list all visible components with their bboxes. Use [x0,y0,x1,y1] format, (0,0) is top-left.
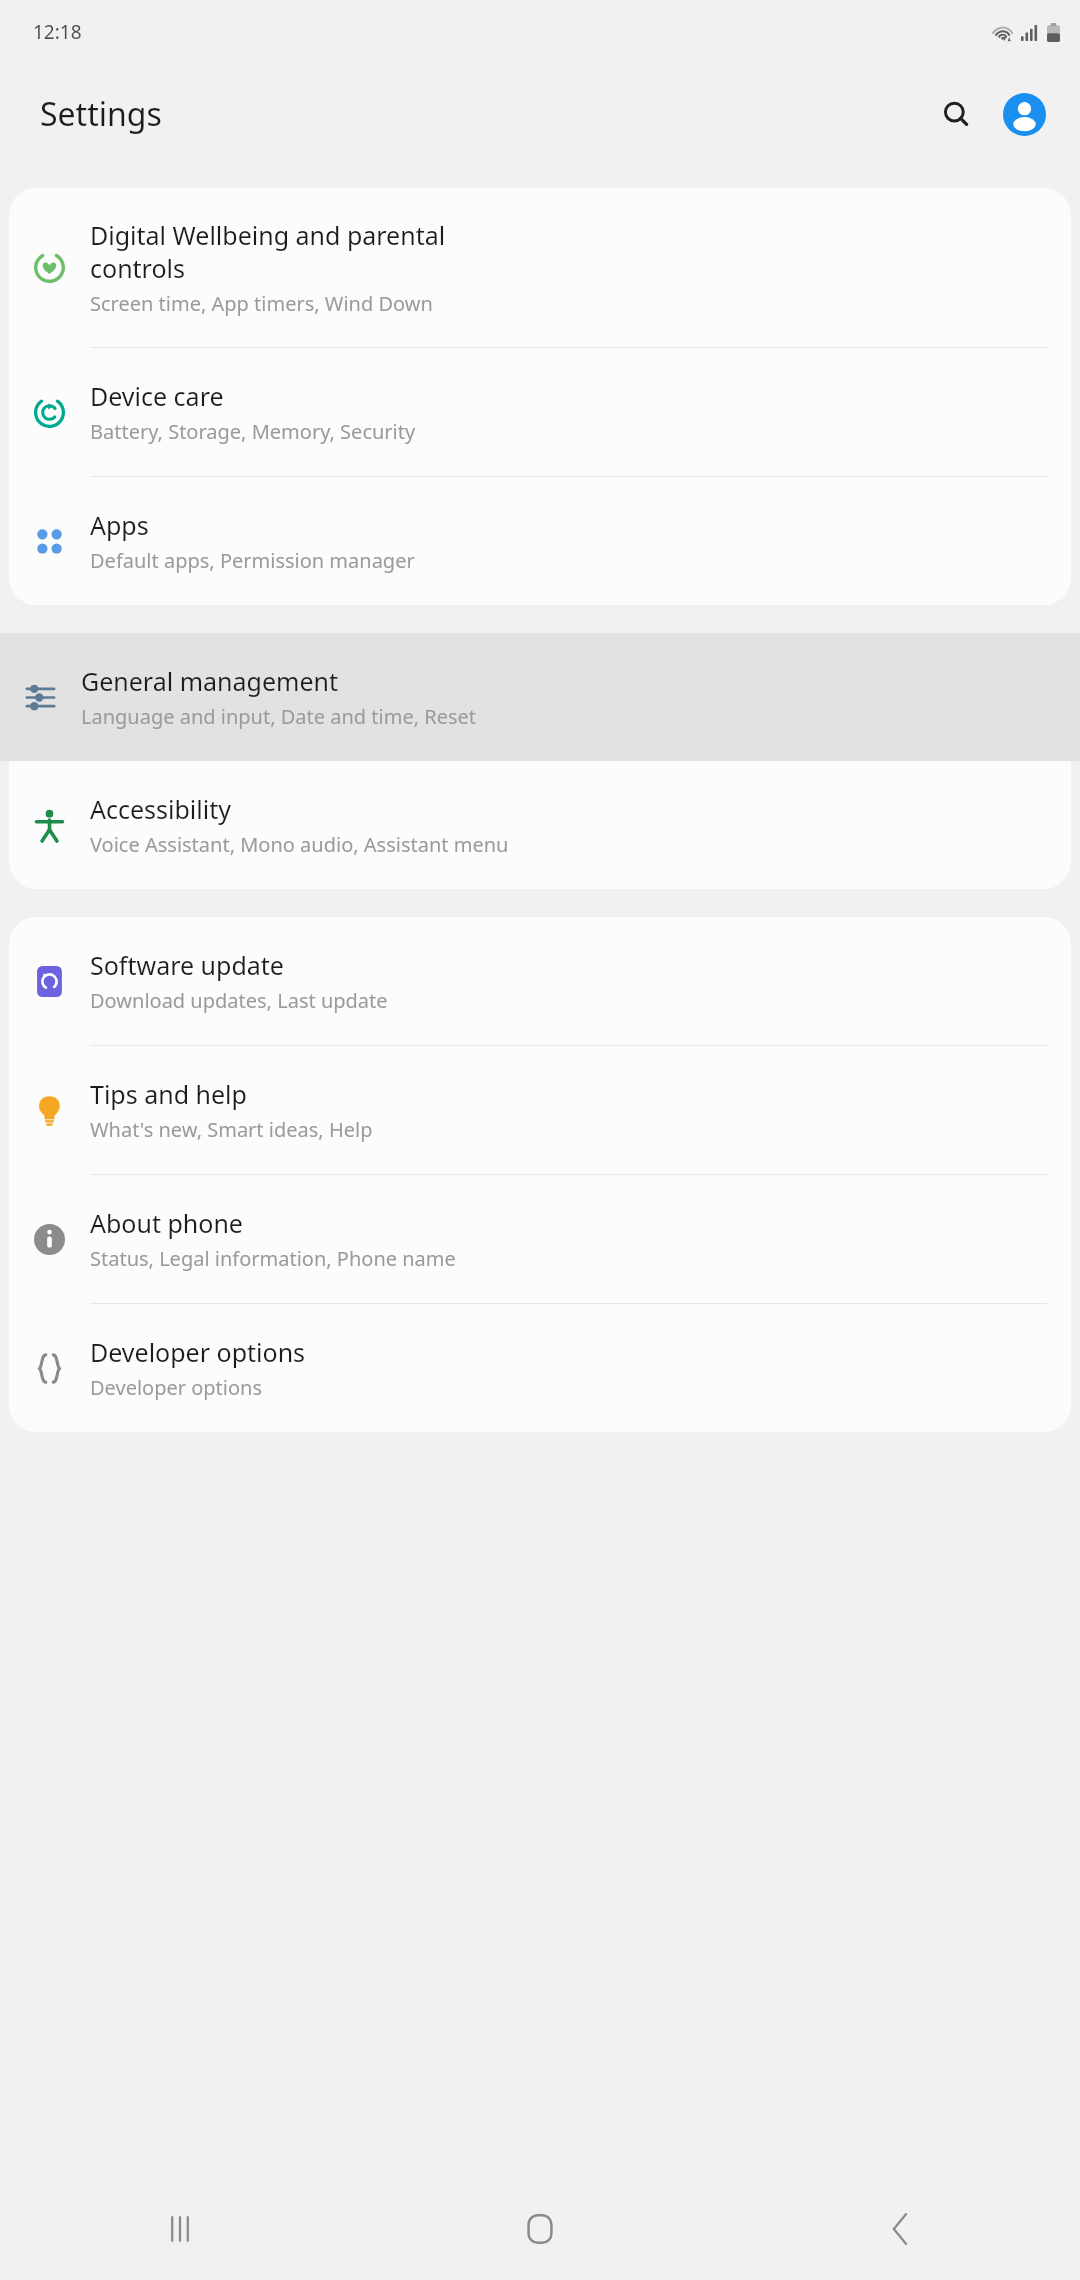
button[interactable]: Accessibility [9,761,1071,889]
button[interactable]: Digital Wellbeing and parental controls [9,188,1071,347]
staticText: Download updates, Last update [90,987,388,1014]
staticText: Developer options [90,1374,263,1401]
button[interactable]: Software update [9,917,1071,1045]
button[interactable]: General management [0,633,1080,761]
button[interactable]: Apps [9,477,1071,605]
staticText: Device care [90,379,224,413]
staticText: Digital Wellbeing and parental controls [90,218,446,285]
staticText: Software update [90,948,284,982]
button[interactable]: Home [360,2177,720,2280]
button[interactable]: Developer options [9,1304,1071,1432]
button[interactable]: About phone [9,1175,1071,1303]
button[interactable]: Tips and help [9,1046,1071,1174]
staticText: Language and input, Date and time, Reset [81,703,477,730]
staticText: Status, Legal information, Phone name [90,1245,456,1272]
staticText: Settings [40,92,162,136]
staticText: Developer options [90,1335,306,1369]
staticText: Tips and help [90,1077,247,1111]
button[interactable]: Account [998,88,1050,140]
staticText: Default apps, Permission manager [90,547,415,574]
staticText: Apps [90,508,149,542]
staticText: Screen time, App timers, Wind Down [90,290,433,317]
staticText: Battery, Storage, Memory, Security [90,418,416,445]
staticText: 12:18 [33,19,82,45]
button[interactable]: Device care [9,348,1071,476]
button[interactable]: Recents [0,2177,360,2280]
staticText: Accessibility [90,792,231,826]
staticText: About phone [90,1206,243,1240]
staticText: General management [81,664,338,698]
staticText: Voice Assistant, Mono audio, Assistant m… [90,831,509,858]
button[interactable]: Search [930,88,982,140]
staticText: What's new, Smart ideas, Help [90,1116,373,1143]
button[interactable]: Back [720,2177,1080,2280]
